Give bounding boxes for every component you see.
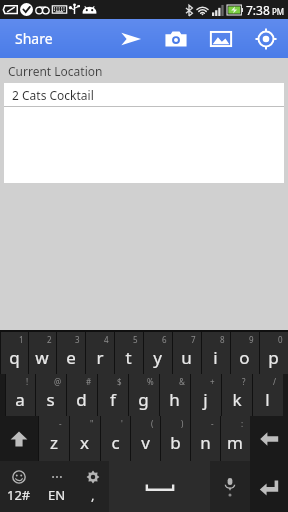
staticText: p — [268, 346, 279, 369]
button[interactable]: 8 — [201, 332, 230, 374]
button[interactable]: 2 — [28, 332, 56, 374]
button[interactable]: Backspace — [250, 416, 288, 461]
staticText: : — [241, 418, 244, 429]
staticText: - — [59, 418, 62, 429]
staticText: ( — [151, 418, 154, 429]
button[interactable]: 2 Cats Cocktail — [4, 83, 284, 106]
staticText: 2 Cats Cocktail — [12, 87, 94, 103]
staticText: 1 — [19, 334, 24, 345]
staticText: " — [90, 418, 94, 429]
button[interactable]: ! — [5, 374, 35, 416]
staticText: 4 — [104, 334, 109, 345]
staticText: EN — [48, 486, 66, 504]
staticText: 3 — [75, 334, 80, 345]
staticText: u — [181, 346, 192, 369]
staticText: Current Location — [8, 63, 103, 79]
button[interactable]: 5 — [114, 332, 143, 374]
staticText: $ — [117, 376, 122, 387]
staticText: g — [138, 388, 149, 411]
staticText: y — [153, 346, 162, 369]
staticText: w — [35, 346, 49, 369]
staticText: l — [265, 388, 270, 411]
staticText: e — [66, 346, 76, 369]
staticText: ! — [26, 376, 29, 387]
staticText: o — [239, 346, 250, 369]
button[interactable]: / — [252, 374, 283, 416]
staticText: n — [200, 431, 211, 454]
button[interactable]: Space — [109, 461, 210, 512]
button[interactable]: + — [190, 374, 221, 416]
staticText: 12# — [7, 486, 31, 504]
button[interactable]: ' — [100, 416, 130, 461]
staticText: k — [232, 388, 242, 411]
staticText: 5 — [133, 334, 138, 345]
button[interactable]: : — [220, 416, 250, 461]
staticText: h — [169, 388, 180, 411]
button[interactable]: Share — [0, 19, 105, 58]
staticText: t — [125, 346, 132, 369]
button[interactable]: 4 — [85, 332, 114, 374]
button[interactable]: Enter — [250, 461, 288, 512]
staticText: 7 — [191, 334, 196, 345]
staticText: , — [91, 486, 95, 504]
staticText: 2 — [47, 334, 52, 345]
staticText: z — [50, 431, 58, 454]
button[interactable]: $ — [97, 374, 128, 416]
button[interactable]: Settings — [76, 461, 109, 512]
staticText: + — [210, 376, 215, 387]
staticText: q — [9, 346, 20, 369]
staticText: 0 — [278, 334, 283, 345]
staticText: b — [170, 431, 181, 454]
button[interactable]: ) — [160, 416, 190, 461]
button[interactable]: # — [66, 374, 97, 416]
button[interactable]: Language — [38, 461, 76, 512]
staticText: % — [147, 376, 154, 387]
button[interactable]: 7 — [172, 332, 201, 374]
staticText: 8 — [220, 334, 225, 345]
staticText: s — [46, 388, 55, 411]
staticText: @ — [54, 376, 62, 387]
button[interactable]: % — [128, 374, 159, 416]
staticText: 9 — [249, 334, 254, 345]
button[interactable]: Send — [108, 19, 153, 58]
staticText: ? — [242, 376, 246, 387]
staticText: & — [179, 376, 185, 387]
button[interactable]: ( — [130, 416, 160, 461]
button[interactable]: Voice input — [210, 461, 250, 512]
staticText: v — [141, 431, 150, 454]
staticText: d — [76, 388, 87, 411]
staticText: - — [211, 418, 214, 429]
staticText: r — [96, 346, 104, 369]
button[interactable]: ? — [221, 374, 252, 416]
staticText: f — [110, 388, 116, 411]
staticText: i — [213, 346, 218, 369]
button[interactable]: " — [69, 416, 100, 461]
button[interactable]: 0 — [259, 332, 288, 374]
staticText: Share — [15, 29, 53, 48]
staticText: m — [227, 431, 243, 454]
button[interactable]: - — [190, 416, 220, 461]
button[interactable]: - — [38, 416, 69, 461]
button[interactable]: My location — [243, 19, 288, 58]
staticText: 6 — [162, 334, 167, 345]
button[interactable]: @ — [35, 374, 66, 416]
staticText: x — [80, 431, 89, 454]
button[interactable]: & — [159, 374, 190, 416]
staticText: c — [111, 431, 120, 454]
staticText: PM — [272, 6, 285, 17]
button[interactable]: 3 — [56, 332, 85, 374]
button[interactable]: Camera — [153, 19, 198, 58]
staticText: ) — [181, 418, 184, 429]
button[interactable]: 6 — [143, 332, 172, 374]
staticText: ' — [121, 418, 123, 429]
staticText: / — [273, 376, 276, 387]
button[interactable]: Gallery — [198, 19, 243, 58]
button[interactable]: Symbols — [0, 461, 38, 512]
staticText: # — [86, 376, 92, 387]
button[interactable]: Shift — [0, 416, 38, 461]
staticText: a — [15, 388, 25, 411]
button[interactable]: 9 — [230, 332, 259, 374]
staticText: j — [203, 388, 208, 411]
button[interactable]: 1 — [0, 332, 28, 374]
